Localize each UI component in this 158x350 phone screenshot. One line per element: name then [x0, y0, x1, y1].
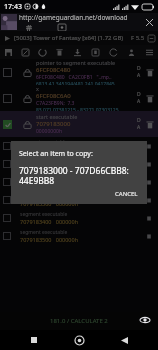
button[interactable]: Refresh: [17, 45, 34, 59]
button[interactable]: segment executable: [0, 155, 158, 173]
staticText: x: [36, 85, 39, 92]
button[interactable]: D: [0, 85, 158, 111]
staticText: D: [137, 65, 141, 72]
button[interactable]: Menu: [3, 34, 12, 43]
staticText: 7079183400 000000h: [20, 218, 79, 225]
button[interactable]: segment executable: [0, 191, 158, 209]
button[interactable]: Bookmark: [86, 45, 104, 59]
button[interactable]: D: [0, 59, 158, 85]
staticText: 6FCF08C480: [36, 66, 71, 74]
button[interactable]: Undo: [104, 45, 122, 59]
staticText: segment executable: [20, 175, 68, 182]
staticText: 7079183500 000000h: [20, 236, 79, 243]
staticText: 7079183000 - 707D66CBB8: 44E9BB8: [19, 165, 129, 187]
button[interactable]: segment executable: [0, 227, 158, 245]
button[interactable]: segment executable: [0, 173, 158, 191]
button[interactable]: Home: [68, 330, 90, 350]
staticText: 83.071.07381215 - 83271.07303125: [36, 107, 119, 111]
button[interactable]: segment executable: [0, 137, 158, 155]
staticText: 6813.41.345194/481.241.0417845: [36, 81, 115, 85]
staticText: 7079183000 000000h: [20, 146, 79, 153]
staticText: 00000000h: [36, 128, 62, 135]
staticText: [5003] Tower of Fantasy [x64] (1.72 GB): [14, 34, 124, 42]
button[interactable]: More: [140, 45, 158, 59]
staticText: 17:43: [4, 2, 22, 12]
staticText: 7079183200 000000h: [20, 182, 79, 189]
button[interactable]: Download: [68, 45, 86, 59]
button[interactable]: Close notification: [143, 16, 155, 28]
button[interactable]: Back: [113, 330, 135, 350]
button[interactable]: Delete entry: [144, 119, 155, 130]
button[interactable]: Save: [0, 45, 17, 59]
staticText: 6FCF08C6A0: [36, 92, 71, 100]
staticText: pointer to segment executable: [36, 59, 116, 66]
button[interactable]: Sort: [34, 45, 51, 59]
button[interactable]: D: [0, 111, 158, 137]
staticText: http://gameguardian.net/download: [19, 13, 128, 22]
staticText: 7079183000: [36, 120, 71, 128]
staticText: segment executable: [20, 211, 68, 218]
staticText: A: [137, 124, 141, 131]
button[interactable]: Toggle overlay: [138, 313, 151, 326]
staticText: Select an item to copy:: [19, 149, 93, 159]
button[interactable]: Delete entry: [144, 67, 155, 78]
staticText: 6FCF08C480 CA2C0FB1 "..mp..: [36, 74, 112, 81]
button[interactable]: Delete entry: [144, 93, 155, 104]
button[interactable]: Recents: [23, 330, 45, 350]
button[interactable]: Delete: [144, 141, 154, 151]
button[interactable]: CANCEL: [106, 188, 147, 200]
button[interactable]: Delete: [144, 159, 154, 169]
staticText: A: [137, 72, 141, 79]
staticText: 181.0 / CALCULATE 2: [50, 317, 108, 325]
staticText: CANCEL: [115, 190, 138, 198]
button[interactable]: Delete: [144, 195, 154, 205]
staticText: 7079183300 000000h: [20, 200, 79, 207]
staticText: D: [137, 91, 141, 98]
button[interactable]: Profile: [122, 45, 140, 59]
staticText: segment executable: [20, 139, 68, 146]
staticText: 7079183100 000000h: [20, 164, 79, 171]
staticText: D: [137, 117, 141, 124]
staticText: C7A23FB9N; 7.3: [36, 100, 75, 107]
button[interactable]: Delete: [51, 45, 68, 59]
staticText: start executable: [36, 113, 78, 120]
button[interactable]: Delete: [144, 177, 154, 187]
button[interactable]: Delete: [144, 213, 154, 223]
button[interactable]: Delete: [144, 231, 154, 241]
staticText: segment executable: [20, 229, 68, 236]
staticText: F 5.5: [131, 34, 145, 42]
button[interactable]: segment executable: [0, 209, 158, 227]
staticText: A: [137, 98, 141, 105]
